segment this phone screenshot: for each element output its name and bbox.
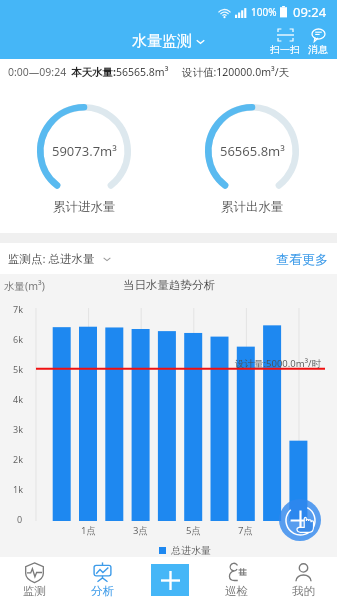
staticText: 0:00—09:24 xyxy=(8,65,67,79)
button[interactable]: Add monitoring point xyxy=(279,499,321,541)
staticText: 当日水量趋势分析 xyxy=(123,278,215,292)
staticText: 巡检 xyxy=(225,584,248,597)
staticText: 09:24 xyxy=(293,3,327,21)
button[interactable]: Add xyxy=(151,564,189,596)
staticText: 56565.8m³ xyxy=(220,142,285,160)
staticText: 5k xyxy=(13,363,23,375)
staticText: 5点 xyxy=(186,524,201,537)
staticText: 3点 xyxy=(133,524,148,537)
button[interactable]: 查看更多 xyxy=(268,245,337,273)
staticText: 分析 xyxy=(91,584,114,597)
button[interactable]: 分析 xyxy=(68,557,136,600)
staticText: 累计进水量 xyxy=(53,199,116,215)
staticText: 100% xyxy=(251,5,277,19)
staticText: 0 xyxy=(17,513,23,525)
button[interactable]: 巡检 xyxy=(203,557,270,600)
staticText: 56565.8m³ xyxy=(116,65,169,79)
staticText: 1k xyxy=(13,483,23,495)
staticText: 我的 xyxy=(292,584,315,597)
button[interactable]: 消息 xyxy=(304,26,332,58)
staticText: 6k xyxy=(13,333,23,345)
staticText: 监测点: 总进水量 xyxy=(8,251,95,267)
staticText: 设计值:120000.0m³/天 xyxy=(182,65,290,79)
staticText: 水量(m³) xyxy=(4,279,45,293)
staticText: 2k xyxy=(13,453,23,465)
staticText: 7点 xyxy=(238,524,253,537)
staticText: 本天水量: xyxy=(71,65,116,79)
button[interactable]: 扫一扫 xyxy=(266,26,304,58)
button[interactable]: 监测点: 总进水量 xyxy=(0,246,117,272)
staticText: 59073.7m³ xyxy=(52,142,117,160)
staticText: 1点 xyxy=(81,524,96,537)
staticText: 4k xyxy=(13,393,23,405)
button[interactable]: 我的 xyxy=(270,557,337,600)
staticText: 水量监测 xyxy=(132,32,192,51)
button[interactable]: 水量监测 xyxy=(126,29,211,54)
staticText: 7k xyxy=(13,303,23,315)
staticText: 总进水量 xyxy=(171,544,211,557)
staticText: 3k xyxy=(13,423,23,435)
staticText: 消息 xyxy=(308,43,328,56)
button[interactable]: 监测 xyxy=(0,557,68,600)
staticText: 设计量:5000.0m³/时 xyxy=(235,357,322,370)
staticText: 累计出水量 xyxy=(221,199,284,215)
staticText: 扫一扫 xyxy=(270,43,300,56)
staticText: 监测 xyxy=(23,584,46,597)
